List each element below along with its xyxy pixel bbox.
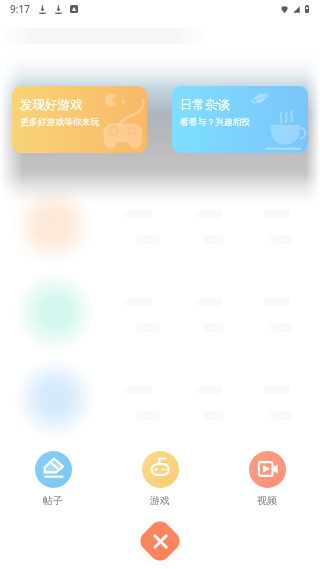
staticText: 日常杂谈	[180, 97, 230, 113]
staticText: 游戏	[150, 494, 170, 507]
staticText: 9:17	[10, 2, 30, 16]
button[interactable]: 日常杂谈	[172, 86, 308, 153]
staticText: 帖子	[43, 494, 63, 507]
staticText: 视频	[257, 494, 277, 507]
button[interactable]: Close	[136, 517, 184, 565]
button[interactable]: 帖子	[16, 449, 90, 509]
button[interactable]: 视频	[230, 449, 304, 509]
staticText: 更多好游戏等你来玩	[20, 117, 100, 128]
staticText: 发现好游戏	[20, 97, 83, 113]
staticText: 看看与？兴趣相投	[180, 117, 251, 128]
button[interactable]: 发现好游戏	[12, 86, 147, 153]
button[interactable]: 游戏	[123, 449, 197, 509]
